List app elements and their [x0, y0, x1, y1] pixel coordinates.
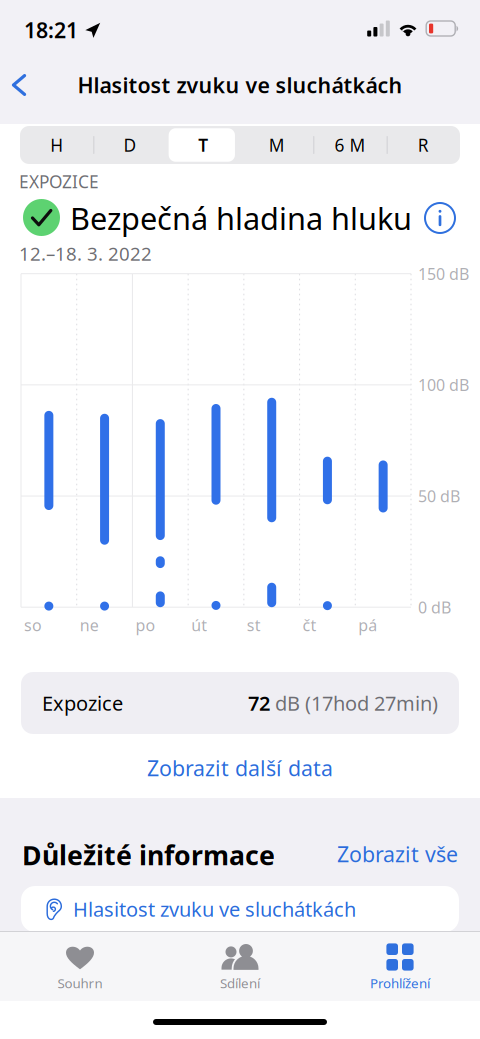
staticText: Zobrazit vše [337, 840, 458, 868]
button[interactable]: Zobrazit vše [337, 840, 458, 868]
staticText: EXPOZICE [19, 170, 99, 193]
staticText: Bezpečná hladina hluku [70, 198, 412, 238]
staticText: 18:21 [24, 16, 78, 44]
staticText: Prohlížení [370, 974, 430, 992]
staticText: čt [303, 614, 317, 636]
staticText: Sdílení [220, 974, 260, 992]
staticText: H [50, 133, 63, 156]
button[interactable]: Informace [425, 203, 455, 233]
button[interactable]: Zpět [0, 62, 38, 108]
staticText: pá [358, 614, 377, 636]
staticText: D [123, 133, 136, 156]
staticText: M [269, 133, 285, 156]
staticText: 50 dB [418, 485, 460, 507]
button[interactable]: Souhrn [0, 931, 160, 1001]
button[interactable]: D [93, 126, 167, 164]
staticText: dB (17hod 27min) [270, 690, 438, 716]
button[interactable]: Sdílení [160, 931, 320, 1001]
staticText: ne [80, 614, 99, 636]
button[interactable]: Hlasitost zvuku ve sluchátkách [21, 886, 459, 932]
staticText: Expozice [42, 690, 123, 716]
button[interactable]: T [167, 126, 240, 164]
staticText: 0 dB [418, 597, 451, 618]
staticText: 100 dB [418, 374, 469, 395]
staticText: so [24, 614, 42, 636]
staticText: 72 [248, 690, 270, 716]
button[interactable]: Prohlížení [320, 931, 480, 1001]
staticText: Souhrn [57, 974, 102, 992]
staticText: Hlasitost zvuku ve sluchátkách [73, 896, 356, 922]
button[interactable]: Zobrazit další data [100, 748, 380, 788]
staticText: R [418, 133, 429, 156]
staticText: út [191, 614, 207, 636]
button[interactable]: 6 M [313, 126, 387, 164]
button[interactable]: R [387, 126, 460, 164]
staticText: 6 M [334, 133, 365, 156]
staticText: 150 dB [418, 263, 469, 284]
staticText: Hlasitost zvuku ve sluchátkách [77, 71, 402, 99]
staticText: 12.–18. 3. 2022 [19, 241, 152, 266]
staticText: Důležité informace [22, 837, 275, 873]
button[interactable]: H [20, 126, 93, 164]
staticText: st [247, 614, 261, 636]
staticText: Zobrazit další data [147, 754, 333, 782]
staticText: po [135, 614, 155, 636]
staticText: T [198, 133, 208, 156]
button[interactable]: M [240, 126, 313, 164]
